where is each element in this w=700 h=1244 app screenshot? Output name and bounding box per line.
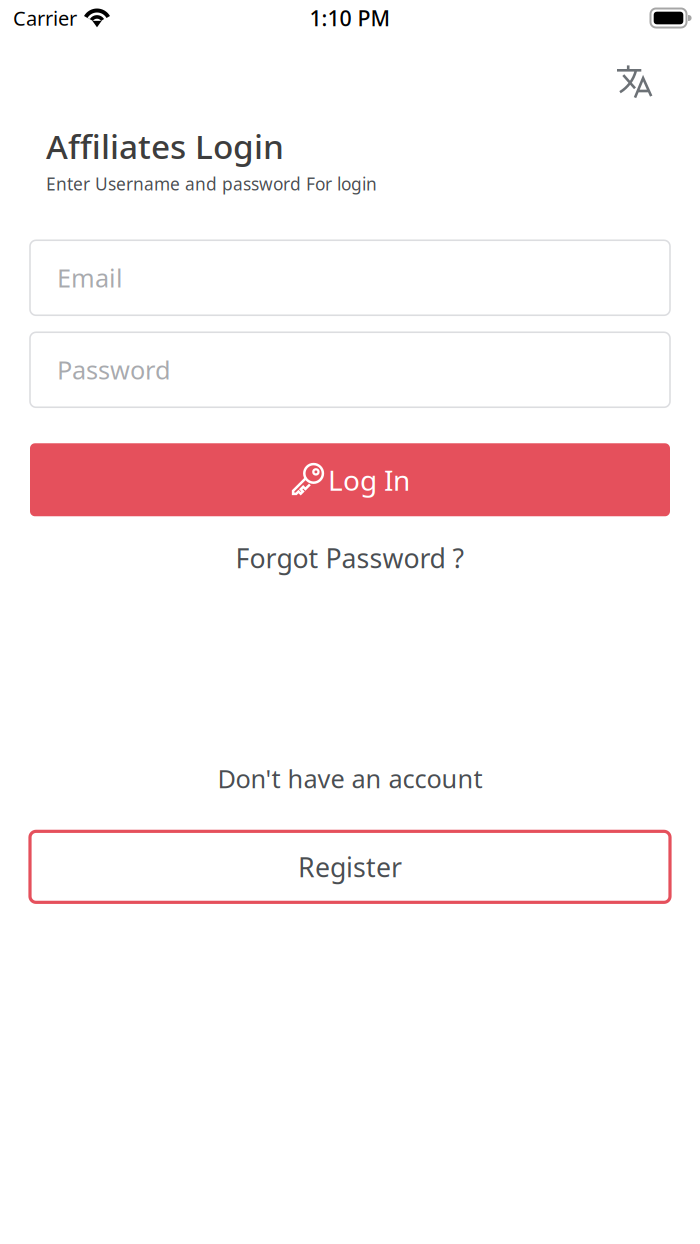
staticText: Register bbox=[298, 849, 402, 884]
staticText: Email bbox=[57, 261, 123, 295]
staticText: Password bbox=[57, 353, 171, 387]
button[interactable]: Forgot Password ? bbox=[235, 540, 464, 576]
staticText: Log In bbox=[328, 461, 410, 498]
staticText: Forgot Password ? bbox=[235, 540, 464, 576]
button[interactable]: Translate bbox=[597, 35, 700, 125]
staticText: Don't have an account bbox=[217, 762, 482, 795]
button[interactable]: Log In bbox=[30, 443, 670, 516]
staticText: Affiliates Login bbox=[46, 124, 284, 168]
staticText: 1:10 PM bbox=[309, 4, 390, 32]
button[interactable]: Register bbox=[30, 831, 670, 902]
staticText: Enter Username and password For login bbox=[46, 172, 377, 195]
staticText: Carrier bbox=[13, 5, 77, 31]
